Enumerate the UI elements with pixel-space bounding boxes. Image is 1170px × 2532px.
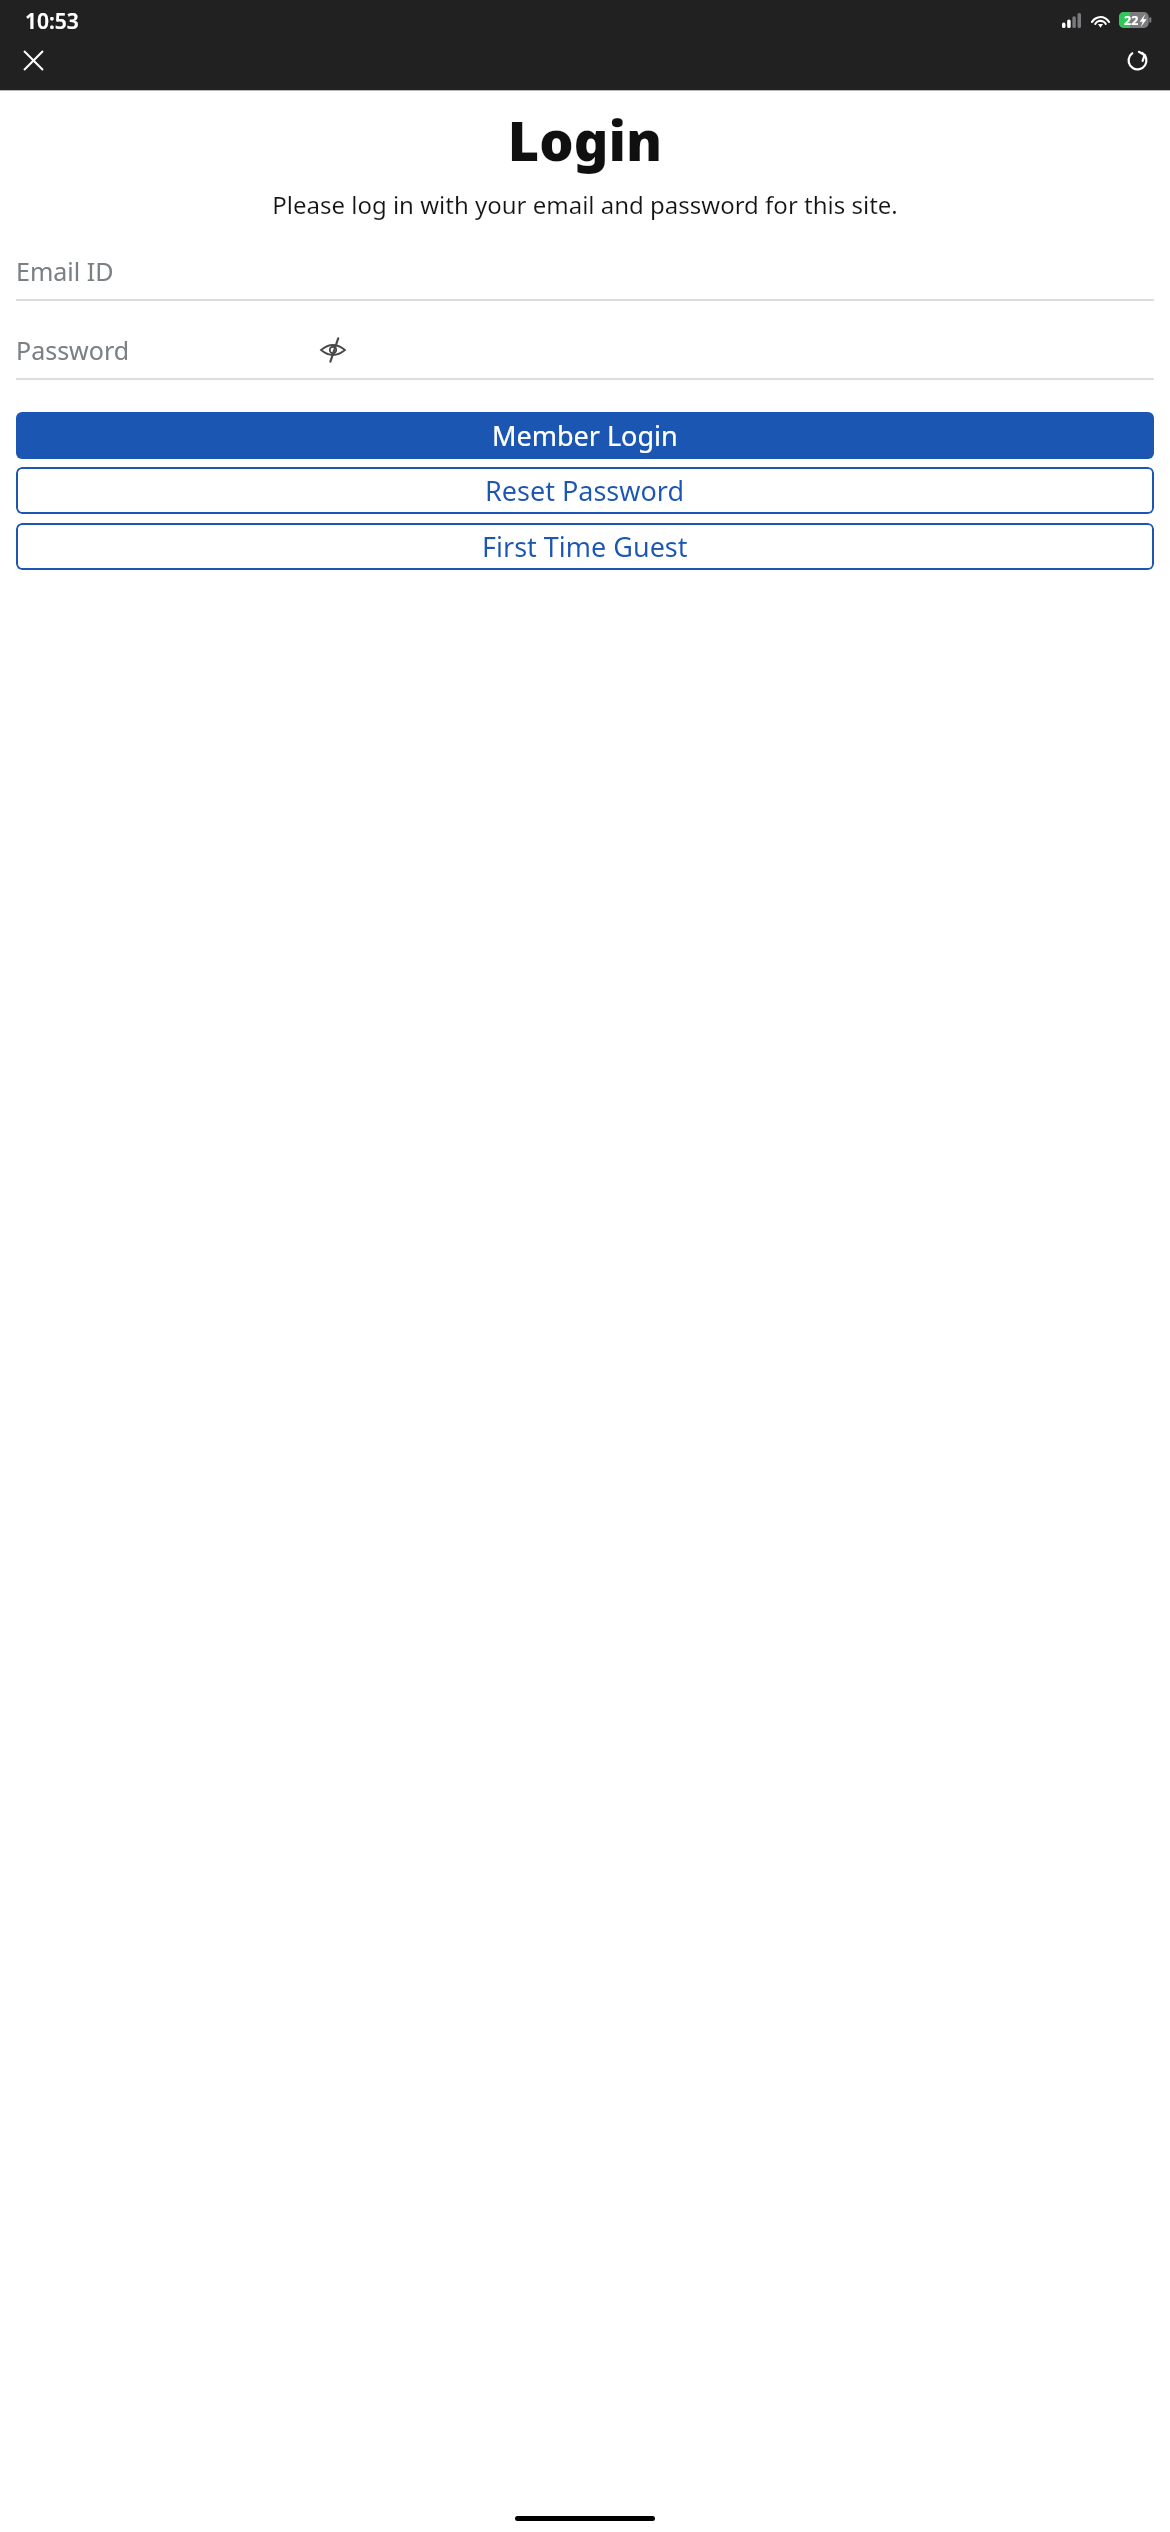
button[interactable]: Reload xyxy=(1111,34,1163,86)
staticText: Password xyxy=(16,333,316,367)
staticText: 22 xyxy=(1124,12,1139,28)
staticText: Member Login xyxy=(492,417,678,454)
staticText: Reset Password xyxy=(485,472,685,509)
button[interactable]: Show password xyxy=(316,333,350,367)
staticText: Email ID xyxy=(16,254,316,288)
button[interactable]: Email ID xyxy=(16,250,1154,301)
button[interactable]: Password xyxy=(16,329,1154,380)
staticText: Please log in with your email and passwo… xyxy=(16,188,1154,221)
button[interactable]: First Time Guest xyxy=(16,523,1154,570)
button[interactable]: Member Login xyxy=(16,412,1154,459)
button[interactable]: Reset Password xyxy=(16,467,1154,514)
staticText: 10:53 xyxy=(25,7,79,36)
staticText: First Time Guest xyxy=(482,528,688,565)
staticText: Login xyxy=(16,103,1154,177)
button[interactable]: Close xyxy=(7,34,59,86)
